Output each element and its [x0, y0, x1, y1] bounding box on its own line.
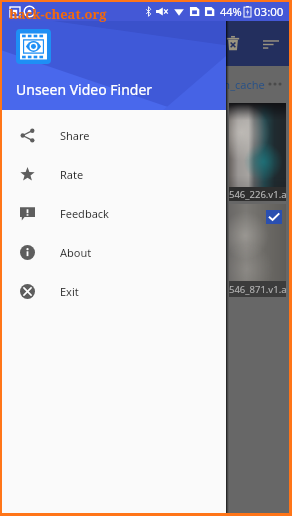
button[interactable]: Share	[2, 116, 226, 155]
staticText: 44%	[220, 4, 242, 19]
button[interactable]: 546_226.v1.acc	[229, 103, 286, 201]
staticText: Rate	[60, 167, 84, 182]
button[interactable]: Feedback	[2, 194, 226, 233]
staticText: Telegram_cache	[182, 77, 265, 92]
button[interactable]: 546_871.v1.acc	[229, 204, 286, 297]
staticText: Exit	[60, 284, 79, 299]
button[interactable]: Delete	[222, 32, 244, 54]
staticText: 546_871.v1.acc	[229, 283, 286, 296]
button[interactable]: More options	[266, 75, 284, 93]
staticText: About	[60, 245, 92, 260]
button[interactable]: Exit	[2, 272, 226, 311]
staticText: 546_226.v1.acc	[229, 188, 286, 201]
button[interactable]: Rate	[2, 155, 226, 194]
button[interactable]: Selected	[266, 210, 282, 224]
staticText: Feedback	[60, 206, 109, 221]
button[interactable]: About	[2, 233, 226, 272]
staticText: Share	[60, 128, 90, 143]
staticText: hack-cheat.org	[9, 5, 107, 23]
staticText: Unseen Video Finder	[16, 80, 153, 99]
button[interactable]: Sort	[261, 34, 281, 54]
staticText: 03:00	[254, 4, 284, 20]
